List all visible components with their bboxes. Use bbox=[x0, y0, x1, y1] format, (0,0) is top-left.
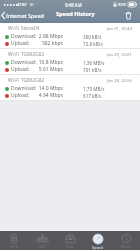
staticText: Speed History bbox=[56, 10, 95, 18]
staticText: 617 kB/s bbox=[83, 93, 102, 99]
staticText: AT&T bbox=[17, 2, 27, 8]
staticText: About bbox=[121, 244, 132, 249]
button[interactable]: Speed bbox=[84, 231, 112, 250]
staticText: Upload: bbox=[11, 40, 30, 47]
button[interactable]: Tools bbox=[56, 231, 84, 250]
staticText: 10.8 Mbps bbox=[33, 59, 63, 66]
staticText: Upload: bbox=[11, 92, 30, 99]
button[interactable]: About bbox=[112, 231, 140, 250]
staticText: 5.61 Mbps bbox=[33, 66, 63, 73]
staticText: 4.94 Mbps bbox=[33, 92, 63, 99]
staticText: Wi-Fi bbox=[8, 51, 19, 58]
staticText: Download: bbox=[11, 33, 37, 40]
staticText: LAN bbox=[38, 244, 46, 249]
staticText: 2.88 Mbps bbox=[33, 33, 63, 40]
staticText: 9:48 AM bbox=[65, 2, 82, 8]
staticText: Stone04 bbox=[21, 25, 40, 32]
staticText: TG862G82 bbox=[21, 51, 45, 58]
staticText: Wi-Fi bbox=[10, 244, 19, 249]
button[interactable]: Delete history bbox=[124, 11, 133, 20]
staticText: Tools bbox=[65, 244, 75, 249]
staticText: 582 kbps bbox=[33, 40, 63, 47]
staticText: 1.75 MB/s bbox=[83, 86, 105, 92]
staticText: 360 kB/s bbox=[83, 34, 102, 40]
button[interactable]: Internet Speed bbox=[1, 10, 44, 20]
button[interactable]: Wi-Fi bbox=[0, 23, 140, 49]
staticText: Download: bbox=[11, 85, 37, 92]
staticText: 701 kB/s bbox=[83, 67, 102, 73]
staticText: Jan 28, 22:56 bbox=[107, 78, 132, 84]
button[interactable]: LAN bbox=[28, 231, 56, 250]
staticText: Jan 29, 23:01 bbox=[107, 52, 132, 58]
staticText: 14.0 Mbps bbox=[33, 85, 63, 92]
staticText: Speed bbox=[92, 245, 104, 250]
staticText: Wi-Fi bbox=[8, 25, 19, 32]
staticText: TG862G82 bbox=[21, 77, 45, 84]
staticText: Upload: bbox=[11, 66, 30, 73]
staticText: 92% bbox=[118, 2, 127, 8]
button[interactable]: Wi-Fi bbox=[0, 75, 140, 101]
staticText: Download: bbox=[11, 59, 37, 66]
button[interactable]: Wi-Fi bbox=[0, 49, 140, 75]
staticText: Jan 31, 20:44 bbox=[107, 26, 132, 32]
staticText: Internet Speed bbox=[6, 12, 44, 19]
staticText: 1.36 MB/s bbox=[83, 60, 105, 66]
button[interactable]: Wi-Fi bbox=[0, 231, 28, 250]
staticText: 72.8 kB/s bbox=[83, 41, 103, 47]
staticText: Wi-Fi bbox=[8, 77, 19, 84]
